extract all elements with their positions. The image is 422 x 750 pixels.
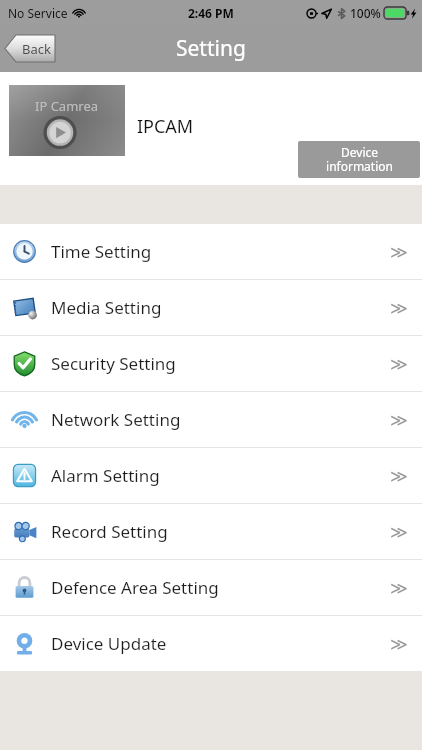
staticText: ≫: [390, 578, 408, 598]
button[interactable]: Camera preview: [9, 85, 125, 156]
staticText: ≫: [390, 634, 408, 654]
button[interactable]: Record Setting: [0, 504, 422, 559]
staticText: No Service: [8, 5, 68, 21]
staticText: Network Setting: [51, 408, 181, 431]
staticText: Media Setting: [51, 296, 162, 319]
staticText: Back: [22, 40, 51, 58]
staticText: Setting: [176, 34, 246, 63]
staticText: ≫: [390, 354, 408, 374]
staticText: ≫: [390, 242, 408, 262]
button[interactable]: Alarm Setting: [0, 448, 422, 503]
staticText: Security Setting: [51, 352, 176, 375]
staticText: 2:46 PM: [188, 5, 234, 21]
button[interactable]: Network Setting: [0, 392, 422, 447]
button[interactable]: Media Setting: [0, 280, 422, 335]
staticText: Time Setting: [51, 240, 152, 263]
staticText: 100%: [350, 5, 381, 21]
button[interactable]: Defence Area Setting: [0, 560, 422, 615]
button[interactable]: Time Setting: [0, 224, 422, 279]
staticText: ≫: [390, 298, 408, 318]
staticText: ≫: [390, 522, 408, 542]
staticText: IPCAM: [137, 114, 194, 139]
staticText: Record Setting: [51, 520, 168, 543]
staticText: Device information: [326, 144, 393, 175]
button[interactable]: Device Update: [0, 616, 422, 671]
staticText: Defence Area Setting: [51, 576, 219, 599]
button[interactable]: Security Setting: [0, 336, 422, 391]
button[interactable]: Back: [5, 35, 55, 62]
staticText: ≫: [390, 410, 408, 430]
staticText: Device Update: [51, 632, 167, 655]
button[interactable]: Device information: [298, 141, 420, 178]
staticText: IP Camrea: [35, 97, 99, 115]
staticText: Alarm Setting: [51, 464, 160, 487]
staticText: ≫: [390, 466, 408, 486]
